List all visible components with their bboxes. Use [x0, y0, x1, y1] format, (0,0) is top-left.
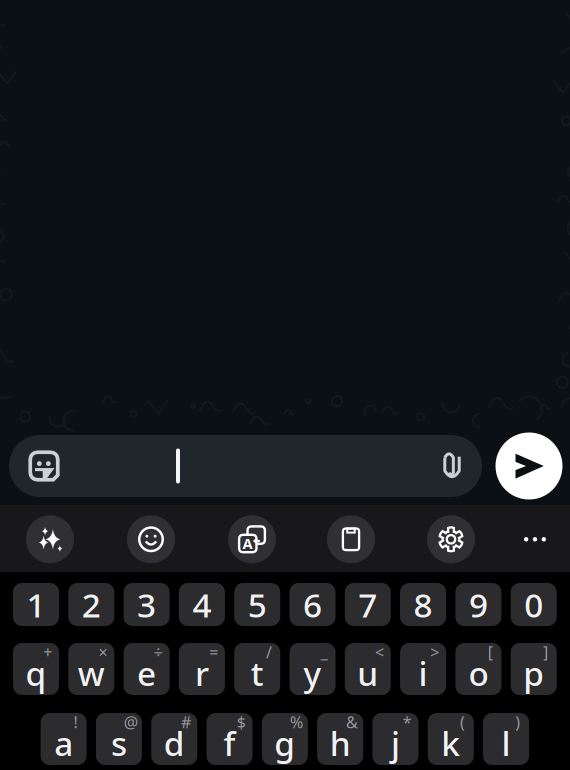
- button[interactable]: s: [96, 713, 142, 765]
- staticText: ÷: [154, 641, 163, 663]
- staticText: o: [468, 651, 488, 695]
- button[interactable]: i: [400, 643, 446, 695]
- button[interactable]: y: [289, 643, 335, 695]
- staticText: y: [303, 651, 321, 695]
- button[interactable]: 3: [124, 583, 170, 626]
- staticText: p: [523, 651, 544, 695]
- staticText: >: [430, 641, 439, 663]
- button[interactable]: [9, 435, 482, 497]
- button[interactable]: Settings: [427, 515, 475, 563]
- staticText: a: [54, 721, 73, 765]
- staticText: f: [223, 721, 235, 765]
- staticText: 3: [137, 582, 156, 627]
- staticText: <: [375, 641, 384, 663]
- staticText: e: [137, 651, 156, 695]
- staticText: 4: [192, 582, 211, 627]
- button[interactable]: p: [511, 643, 557, 695]
- staticText: 7: [358, 582, 377, 627]
- staticText: 9: [469, 582, 488, 627]
- staticText: 0: [524, 582, 543, 627]
- button[interactable]: d: [151, 713, 197, 765]
- staticText: k: [441, 721, 460, 765]
- button[interactable]: u: [345, 643, 391, 695]
- button[interactable]: 6: [289, 583, 335, 626]
- button[interactable]: 0: [511, 583, 557, 626]
- button[interactable]: q: [13, 643, 59, 695]
- staticText: 1: [26, 582, 45, 627]
- staticText: t: [251, 651, 264, 695]
- button[interactable]: Emoji: [127, 515, 175, 563]
- staticText: s: [111, 721, 127, 765]
- button[interactable]: AI assist: [26, 515, 74, 563]
- button[interactable]: 4: [179, 583, 225, 626]
- staticText: 6: [303, 582, 322, 627]
- staticText: r: [195, 651, 209, 695]
- button[interactable]: t: [234, 643, 280, 695]
- button[interactable]: Attach: [429, 443, 475, 489]
- staticText: @: [124, 711, 138, 733]
- staticText: [: [488, 641, 493, 663]
- staticText: i: [419, 651, 428, 695]
- staticText: A: [242, 534, 252, 553]
- button[interactable]: More options: [511, 515, 559, 563]
- staticText: 2: [82, 582, 101, 627]
- button[interactable]: j: [372, 713, 418, 765]
- staticText: d: [164, 721, 185, 765]
- button[interactable]: Stickers: [21, 443, 67, 489]
- button[interactable]: 9: [455, 583, 501, 626]
- staticText: j: [391, 721, 400, 765]
- button[interactable]: r: [179, 643, 225, 695]
- staticText: ×: [98, 641, 107, 663]
- button[interactable]: g: [262, 713, 308, 765]
- staticText: (: [460, 711, 465, 733]
- staticText: %: [290, 711, 303, 733]
- button[interactable]: h: [317, 713, 363, 765]
- staticText: g: [274, 721, 295, 765]
- staticText: ): [515, 711, 520, 733]
- staticText: q: [25, 651, 46, 695]
- button[interactable]: k: [428, 713, 474, 765]
- button[interactable]: o: [455, 643, 501, 695]
- staticText: w: [78, 651, 105, 695]
- staticText: l: [501, 721, 510, 765]
- staticText: _: [321, 641, 328, 663]
- staticText: ]: [543, 641, 548, 663]
- button[interactable]: w: [68, 643, 114, 695]
- staticText: 5: [248, 582, 267, 627]
- button[interactable]: Send: [495, 432, 562, 499]
- button[interactable]: 8: [400, 583, 446, 626]
- button[interactable]: e: [124, 643, 170, 695]
- button[interactable]: 7: [345, 583, 391, 626]
- staticText: /: [266, 641, 272, 663]
- button[interactable]: Clipboard: [327, 515, 375, 563]
- staticText: h: [330, 721, 351, 765]
- staticText: &: [346, 711, 358, 733]
- staticText: =: [209, 641, 218, 663]
- button[interactable]: a: [41, 713, 87, 765]
- staticText: !: [73, 711, 77, 733]
- staticText: #: [181, 711, 191, 733]
- button[interactable]: l: [483, 713, 529, 765]
- button[interactable]: 1: [13, 583, 59, 626]
- button[interactable]: f: [206, 713, 252, 765]
- staticText: +: [43, 641, 52, 663]
- staticText: 8: [414, 582, 433, 627]
- staticText: u: [357, 651, 378, 695]
- button[interactable]: 2: [68, 583, 114, 626]
- staticText: *: [403, 711, 412, 733]
- staticText: $: [237, 711, 246, 733]
- button[interactable]: Translate: [228, 515, 276, 563]
- button[interactable]: 5: [234, 583, 280, 626]
